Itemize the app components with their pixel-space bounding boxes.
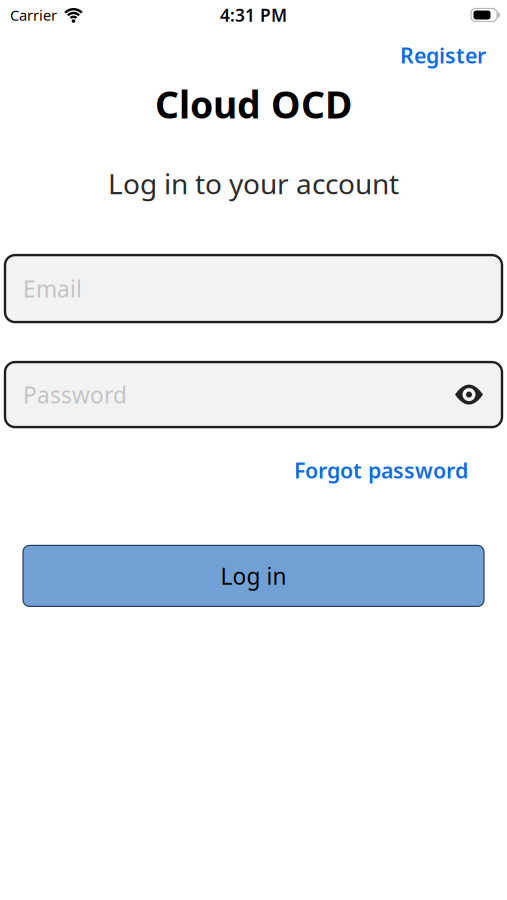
staticText: 4:31 PM — [220, 3, 287, 26]
staticText: Log in to your account — [108, 165, 399, 202]
staticText: Forgot password — [294, 456, 468, 484]
button[interactable]: Forgot password — [294, 456, 468, 484]
staticText: Email — [23, 273, 82, 304]
staticText: Cloud OCD — [155, 79, 352, 129]
staticText: Password — [23, 379, 127, 410]
button[interactable]: Log in — [23, 545, 484, 606]
staticText: Log in — [220, 561, 286, 591]
button[interactable]: Show password — [455, 385, 483, 404]
button[interactable]: Register — [400, 41, 486, 69]
staticText: Carrier — [10, 5, 57, 25]
staticText: Register — [400, 41, 486, 69]
